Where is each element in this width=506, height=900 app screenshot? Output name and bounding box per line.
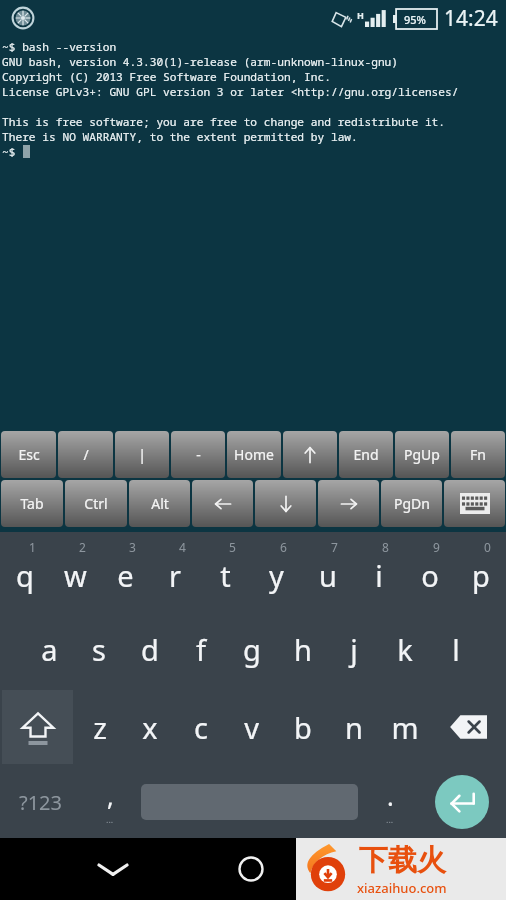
staticText: |: [138, 445, 146, 464]
staticText: 1: [29, 539, 36, 555]
staticText: ,: [107, 779, 114, 813]
staticText: xiazaihuo.com: [357, 879, 447, 897]
staticText: n: [345, 708, 363, 747]
button[interactable]: Alt: [129, 480, 190, 527]
button[interactable]: Switch keyboard: [444, 480, 505, 527]
button[interactable]: Arrow up: [283, 431, 337, 478]
staticText: License GPLv3+: GNU GPL version 3 or lat…: [2, 84, 506, 99]
button[interactable]: 7: [302, 532, 353, 610]
staticText: q: [16, 556, 34, 595]
button[interactable]: 2: [50, 532, 100, 610]
staticText: x: [142, 708, 158, 747]
staticText: Ctrl: [84, 494, 108, 513]
staticText: e: [117, 556, 134, 595]
button[interactable]: 8: [353, 532, 404, 610]
staticText: s: [92, 630, 106, 669]
button[interactable]: Fn: [451, 431, 505, 478]
button[interactable]: v: [226, 688, 277, 766]
button[interactable]: Backspace: [430, 688, 506, 766]
button[interactable]: PgDn: [381, 480, 442, 527]
staticText: r: [169, 556, 181, 595]
button[interactable]: m: [379, 688, 430, 766]
button[interactable]: Home: [227, 431, 281, 478]
button[interactable]: Ctrl: [65, 480, 127, 527]
button[interactable]: 1: [0, 532, 50, 610]
staticText: Fn: [470, 445, 486, 464]
button[interactable]: /: [58, 431, 113, 478]
button[interactable]: Esc: [1, 431, 56, 478]
button[interactable]: c: [175, 688, 226, 766]
button[interactable]: f: [175, 610, 226, 688]
staticText: d: [141, 630, 159, 669]
staticText: ~$ bash --version: [2, 39, 117, 54]
staticText: j: [350, 630, 358, 669]
staticText: This is free software; you are free to c…: [2, 114, 446, 129]
staticText: v: [244, 708, 259, 747]
button[interactable]: x: [125, 688, 175, 766]
staticText: GNU bash, version 4.3.30(1)-release (arm…: [2, 54, 399, 69]
staticText: i: [375, 556, 383, 595]
button[interactable]: Arrow right: [318, 480, 379, 527]
button[interactable]: .: [361, 766, 418, 838]
button[interactable]: 6: [251, 532, 302, 610]
staticText: o: [421, 556, 439, 595]
button[interactable]: -: [171, 431, 225, 478]
staticText: a: [41, 630, 58, 669]
button[interactable]: 0: [455, 532, 506, 610]
staticText: 0: [484, 539, 491, 555]
button[interactable]: g: [226, 610, 277, 688]
staticText: u: [319, 556, 337, 595]
staticText: p: [472, 556, 490, 595]
button[interactable]: Arrow left: [192, 480, 253, 527]
button[interactable]: l: [430, 610, 481, 688]
staticText: f: [196, 630, 206, 669]
button[interactable]: j: [328, 610, 379, 688]
staticText: 5: [229, 539, 236, 555]
button[interactable]: Tab: [1, 480, 63, 527]
staticText: 14:24: [444, 4, 498, 33]
button[interactable]: k: [379, 610, 430, 688]
staticText: 2: [79, 539, 86, 555]
staticText: z: [93, 708, 107, 747]
button[interactable]: Shift: [2, 690, 73, 764]
staticText: H: [357, 9, 364, 21]
button[interactable]: 5: [200, 532, 251, 610]
staticText: ...: [106, 813, 114, 825]
button[interactable]: ?123: [0, 766, 81, 838]
staticText: y: [269, 556, 284, 595]
button[interactable]: h: [277, 610, 328, 688]
button[interactable]: ~$ bash --version: [0, 36, 506, 425]
staticText: /: [83, 445, 89, 464]
staticText: End: [353, 445, 379, 464]
button[interactable]: |: [115, 431, 169, 478]
staticText: l: [452, 630, 460, 669]
button[interactable]: a: [24, 610, 74, 688]
button[interactable]: 4: [150, 532, 200, 610]
button[interactable]: n: [328, 688, 379, 766]
button[interactable]: Home: [224, 842, 278, 896]
staticText: k: [397, 630, 413, 669]
staticText: PgUp: [404, 445, 440, 464]
staticText: 95%: [404, 12, 426, 27]
staticText: m: [391, 708, 419, 747]
staticText: 6: [280, 539, 287, 555]
button[interactable]: Hide keyboard: [86, 842, 140, 896]
button[interactable]: Arrow down: [255, 480, 316, 527]
button[interactable]: d: [124, 610, 175, 688]
staticText: 7: [331, 539, 338, 555]
staticText: Alt: [151, 494, 169, 513]
button[interactable]: 9: [404, 532, 455, 610]
staticText: Home: [234, 445, 274, 464]
button[interactable]: 3: [100, 532, 150, 610]
staticText: ...: [386, 813, 394, 825]
button[interactable]: b: [277, 688, 328, 766]
button[interactable]: End: [339, 431, 393, 478]
button[interactable]: s: [74, 610, 124, 688]
staticText: 8: [382, 539, 389, 555]
button[interactable]: ,: [81, 766, 138, 838]
staticText: 下载火: [359, 842, 446, 879]
button[interactable]: PgUp: [395, 431, 449, 478]
button[interactable]: Enter: [435, 775, 489, 829]
button[interactable]: z: [75, 688, 125, 766]
